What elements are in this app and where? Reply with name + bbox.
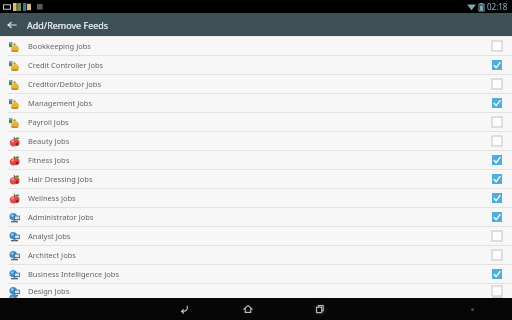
button[interactable]: Unchecked xyxy=(491,285,503,297)
staticText: Wellness Jobs xyxy=(28,193,76,203)
button[interactable]: Back xyxy=(169,298,199,320)
staticText: Fitness Jobs xyxy=(28,155,70,165)
button[interactable]: Architect Jobs xyxy=(0,246,512,264)
button[interactable]: Checked xyxy=(491,97,503,109)
button[interactable]: Administrator Jobs xyxy=(0,208,512,226)
button[interactable]: Management Jobs xyxy=(0,94,512,112)
button[interactable]: Unchecked xyxy=(491,135,503,147)
button[interactable]: Back xyxy=(0,13,23,36)
button[interactable]: Credit Controller Jobs xyxy=(0,56,512,74)
button[interactable]: Beauty Jobs xyxy=(0,132,512,150)
button[interactable]: Checked xyxy=(491,173,503,185)
staticText: Management Jobs xyxy=(28,98,93,108)
button[interactable]: Bookkeeping Jobs xyxy=(0,37,512,55)
button[interactable]: Analyst Jobs xyxy=(0,227,512,245)
staticText: Payroll Jobs xyxy=(28,117,69,127)
button[interactable]: Payroll Jobs xyxy=(0,113,512,131)
staticText: Analyst Jobs xyxy=(28,231,71,241)
button[interactable]: Creditor/Debtor Jobs xyxy=(0,75,512,93)
button[interactable]: Unchecked xyxy=(491,40,503,52)
button[interactable]: Hair Dressing Jobs xyxy=(0,170,512,188)
staticText: Business Intelligence Jobs xyxy=(28,269,120,279)
button[interactable]: Checked xyxy=(491,268,503,280)
button[interactable]: Design Jobs xyxy=(0,284,512,298)
button[interactable]: Unchecked xyxy=(491,78,503,90)
staticText: Bookkeeping Jobs xyxy=(28,41,91,51)
button[interactable]: Checked xyxy=(491,154,503,166)
staticText: Administrator Jobs xyxy=(28,212,94,222)
button[interactable]: Business Intelligence Jobs xyxy=(0,265,512,283)
staticText: Design Jobs xyxy=(28,286,70,296)
button[interactable]: Recent apps xyxy=(297,298,343,320)
button[interactable]: Home xyxy=(233,298,263,320)
button[interactable]: Checked xyxy=(491,211,503,223)
staticText: Hair Dressing Jobs xyxy=(28,174,93,184)
staticText: Beauty Jobs xyxy=(28,136,70,146)
staticText: 02:18 xyxy=(487,1,508,12)
button[interactable]: Checked xyxy=(491,59,503,71)
staticText: Architect Jobs xyxy=(28,250,76,260)
button[interactable]: Checked xyxy=(491,192,503,204)
staticText: Add/Remove Feeds xyxy=(27,19,109,31)
staticText: Credit Controller Jobs xyxy=(28,60,104,70)
button[interactable]: Fitness Jobs xyxy=(0,151,512,169)
button[interactable]: Unchecked xyxy=(491,230,503,242)
button[interactable]: Wellness Jobs xyxy=(0,189,512,207)
staticText: Creditor/Debtor Jobs xyxy=(28,79,101,89)
button[interactable]: Unchecked xyxy=(491,249,503,261)
button[interactable]: Unchecked xyxy=(491,116,503,128)
